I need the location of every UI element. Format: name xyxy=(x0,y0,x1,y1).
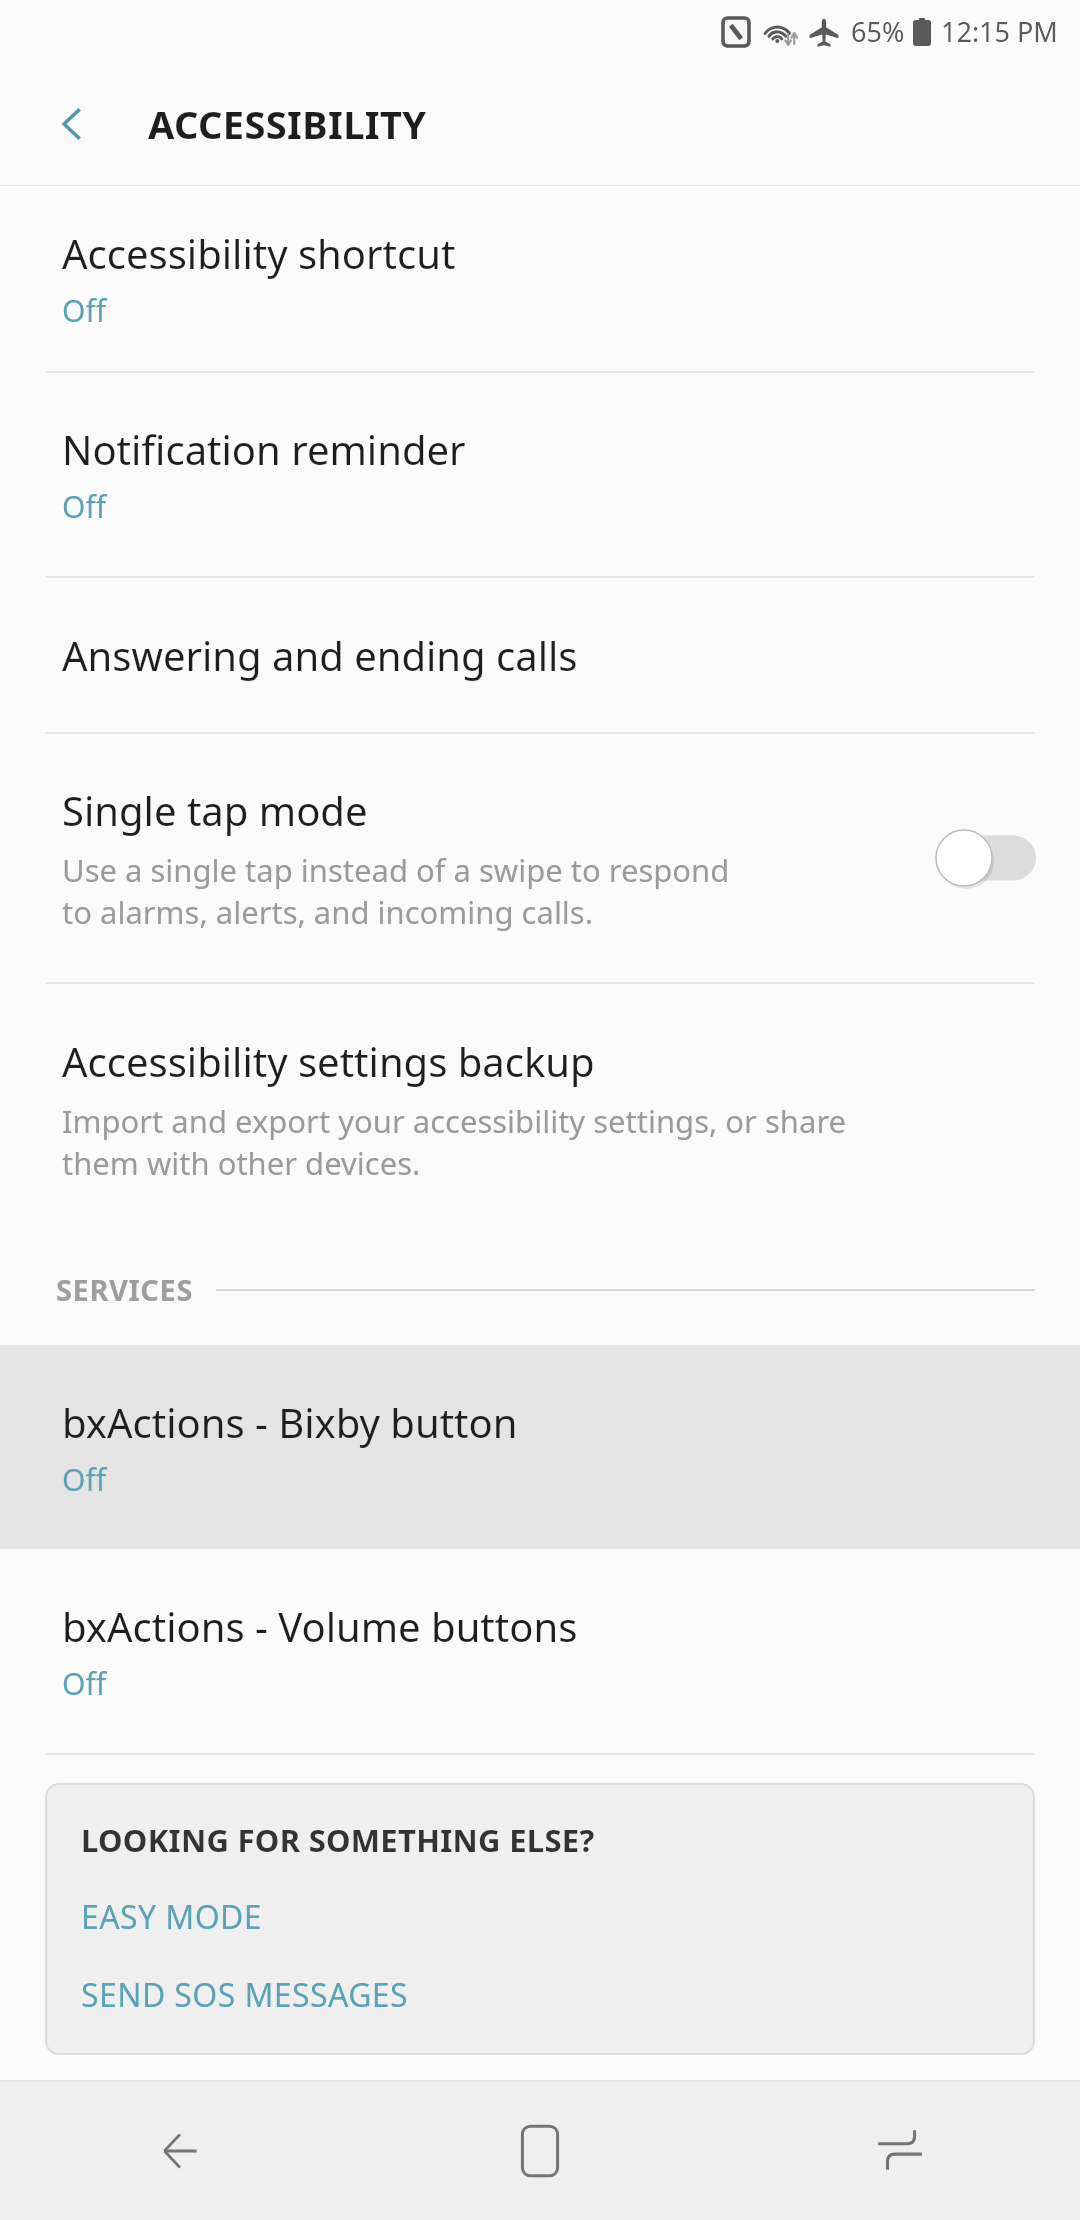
button[interactable]: bxActions - Bixby button xyxy=(0,1345,1080,1549)
button[interactable]: EASY MODE xyxy=(81,1895,1005,1939)
staticText: SEND SOS MESSAGES xyxy=(81,1973,409,2017)
button[interactable]: Single tap mode xyxy=(0,734,1080,982)
staticText: bxActions - Volume buttons xyxy=(62,1599,578,1653)
staticText: Off xyxy=(62,1459,107,1500)
staticText: 12:15 PM xyxy=(941,13,1058,50)
staticText: Single tap mode xyxy=(62,783,368,837)
staticText: SERVICES xyxy=(56,1270,194,1309)
staticText: Off xyxy=(62,290,107,331)
staticText: Use a single tap instead of a swipe to r… xyxy=(62,849,730,891)
button[interactable]: Back xyxy=(0,2082,360,2220)
staticText: Answering and ending calls xyxy=(62,628,578,682)
staticText: to alarms, alerts, and incoming calls. xyxy=(62,891,594,933)
button[interactable]: Answering and ending calls xyxy=(0,578,1080,732)
button[interactable]: Accessibility settings backup xyxy=(0,984,1080,1233)
button[interactable]: Recents xyxy=(720,2082,1080,2220)
staticText: Import and export your accessibility set… xyxy=(62,1100,847,1142)
staticText: Notification reminder xyxy=(62,422,466,476)
button[interactable]: Home xyxy=(360,2082,720,2220)
staticText: Off xyxy=(62,486,107,527)
staticText: ACCESSIBILITY xyxy=(148,98,427,150)
staticText: 65% xyxy=(851,13,905,50)
button[interactable]: Notification reminder xyxy=(0,373,1080,576)
staticText: them with other devices. xyxy=(62,1142,421,1184)
button[interactable]: Single tap mode toggle, off xyxy=(932,819,1040,897)
staticText: Accessibility shortcut xyxy=(62,226,456,280)
button[interactable]: bxActions - Volume buttons xyxy=(0,1549,1080,1753)
staticText: bxActions - Bixby button xyxy=(62,1395,518,1449)
button[interactable]: Accessibility shortcut xyxy=(0,186,1080,371)
staticText: LOOKING FOR SOMETHING ELSE? xyxy=(81,1819,595,1861)
staticText: Off xyxy=(62,1663,107,1704)
staticText: Accessibility settings backup xyxy=(62,1034,595,1088)
button[interactable]: Back xyxy=(26,78,118,170)
staticText: EASY MODE xyxy=(81,1895,263,1939)
button[interactable]: SEND SOS MESSAGES xyxy=(81,1973,1005,2017)
